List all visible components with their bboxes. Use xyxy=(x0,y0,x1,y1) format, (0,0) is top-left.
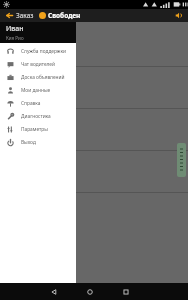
staticText: Доска объявлений xyxy=(21,74,65,81)
button[interactable]: Выход xyxy=(0,136,76,149)
button[interactable] xyxy=(0,20,188,66)
staticText: Параметры xyxy=(21,126,48,133)
button[interactable]: Параметры xyxy=(0,123,76,136)
staticText: Заказ xyxy=(16,11,34,20)
button[interactable]: Status label xyxy=(177,143,186,177)
button[interactable]: Иван xyxy=(0,22,76,43)
button[interactable] xyxy=(0,108,188,150)
button[interactable] xyxy=(39,12,46,19)
staticText: Мои данные xyxy=(21,87,51,94)
button[interactable]: Back xyxy=(46,284,62,300)
button[interactable]: Back xyxy=(4,10,15,21)
staticText: Выход xyxy=(21,139,36,146)
button[interactable]: Sound xyxy=(173,10,184,21)
button[interactable]: Справка xyxy=(0,97,76,110)
button[interactable]: Диагностика xyxy=(0,110,76,123)
staticText: Справка xyxy=(21,100,41,107)
staticText: Чат водителей xyxy=(21,61,55,68)
button[interactable]: Home xyxy=(82,284,98,300)
button[interactable]: Чат водителей xyxy=(0,58,76,71)
staticText: Кия Рио xyxy=(6,35,24,41)
button[interactable]: Мои данные xyxy=(0,84,76,97)
staticText: Иван xyxy=(6,24,24,34)
button[interactable] xyxy=(0,150,188,192)
staticText: Служба поддержки xyxy=(21,48,67,55)
button[interactable]: Служба поддержки xyxy=(0,45,76,58)
button[interactable]: Доска объявлений xyxy=(0,71,76,84)
staticText: Свободен xyxy=(48,11,81,20)
button[interactable] xyxy=(0,192,188,252)
staticText: Диагностика xyxy=(21,113,51,120)
button[interactable] xyxy=(0,66,188,108)
button[interactable]: Recents xyxy=(118,284,134,300)
